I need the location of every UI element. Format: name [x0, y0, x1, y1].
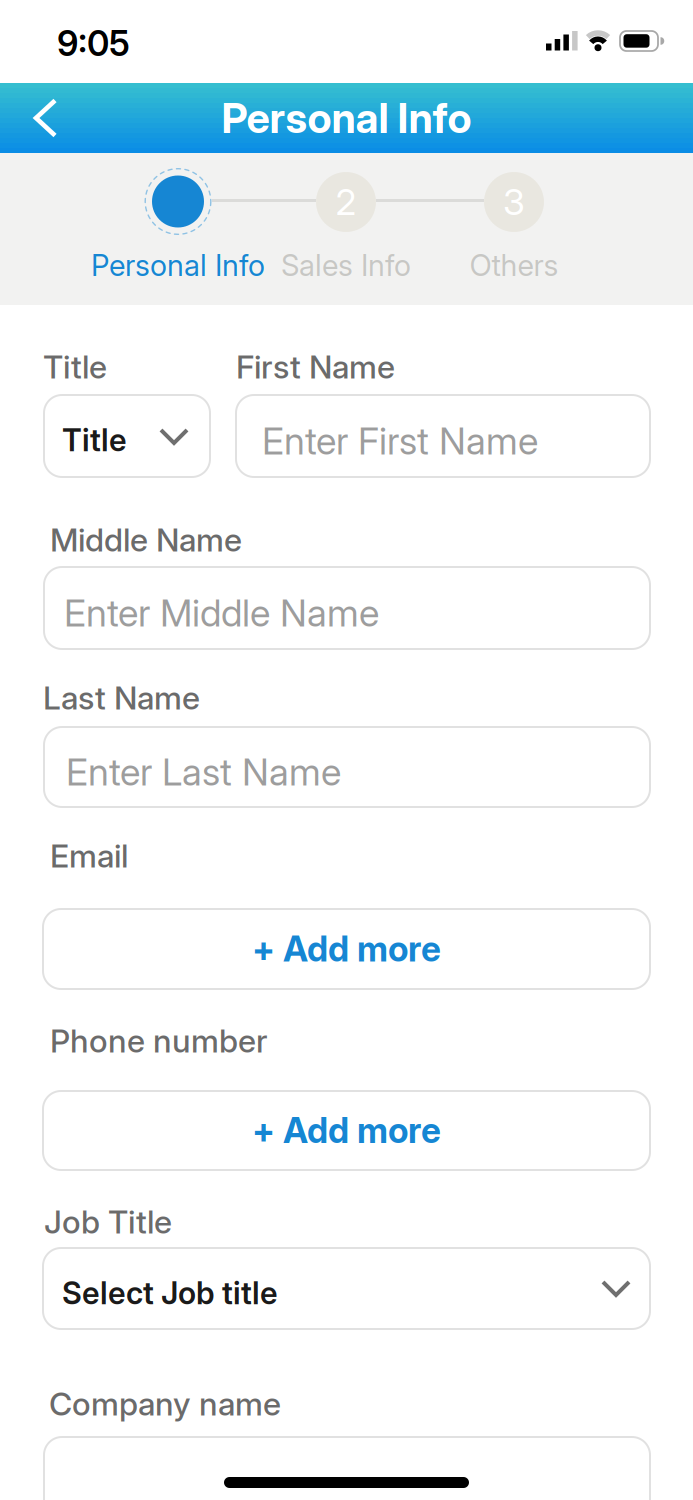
staticText: 9:05: [57, 23, 130, 64]
button[interactable]: Enter Middle Name: [44, 567, 650, 649]
button[interactable]: + Add more: [43, 1091, 650, 1170]
staticText: Middle Name: [50, 521, 242, 559]
staticText: Enter First Name: [262, 419, 538, 463]
button[interactable]: Title: [44, 395, 210, 477]
staticText: Select Job title: [62, 1275, 278, 1311]
button[interactable]: + Add more: [43, 909, 650, 989]
staticText: 2: [335, 181, 356, 223]
staticText: + Add more: [252, 929, 441, 969]
staticText: + Add more: [252, 1110, 441, 1151]
staticText: Phone number: [50, 1022, 268, 1060]
staticText: Enter Last Name: [66, 750, 341, 794]
button[interactable]: Enter Last Name: [44, 727, 650, 807]
button[interactable]: Personal Info: [58, 154, 298, 284]
staticText: Email: [50, 837, 128, 875]
staticText: Enter Middle Name: [64, 591, 379, 635]
staticText: First Name: [236, 348, 395, 386]
button[interactable]: Back: [0, 83, 57, 152]
button[interactable]: 2: [246, 154, 446, 284]
button[interactable]: 3: [414, 154, 614, 284]
staticText: Personal Info: [221, 94, 471, 142]
staticText: Title: [43, 348, 107, 386]
button[interactable]: Enter First Name: [236, 395, 650, 477]
staticText: Sales Info: [281, 248, 411, 283]
staticText: Personal Info: [91, 248, 265, 283]
staticText: Company name: [49, 1385, 281, 1423]
staticText: Others: [469, 248, 558, 283]
button[interactable]: [44, 1437, 650, 1500]
staticText: 3: [503, 181, 525, 223]
staticText: Title: [62, 422, 127, 458]
button[interactable]: Select Job title: [43, 1248, 650, 1329]
staticText: Last Name: [43, 679, 200, 717]
staticText: Job Title: [44, 1203, 172, 1241]
